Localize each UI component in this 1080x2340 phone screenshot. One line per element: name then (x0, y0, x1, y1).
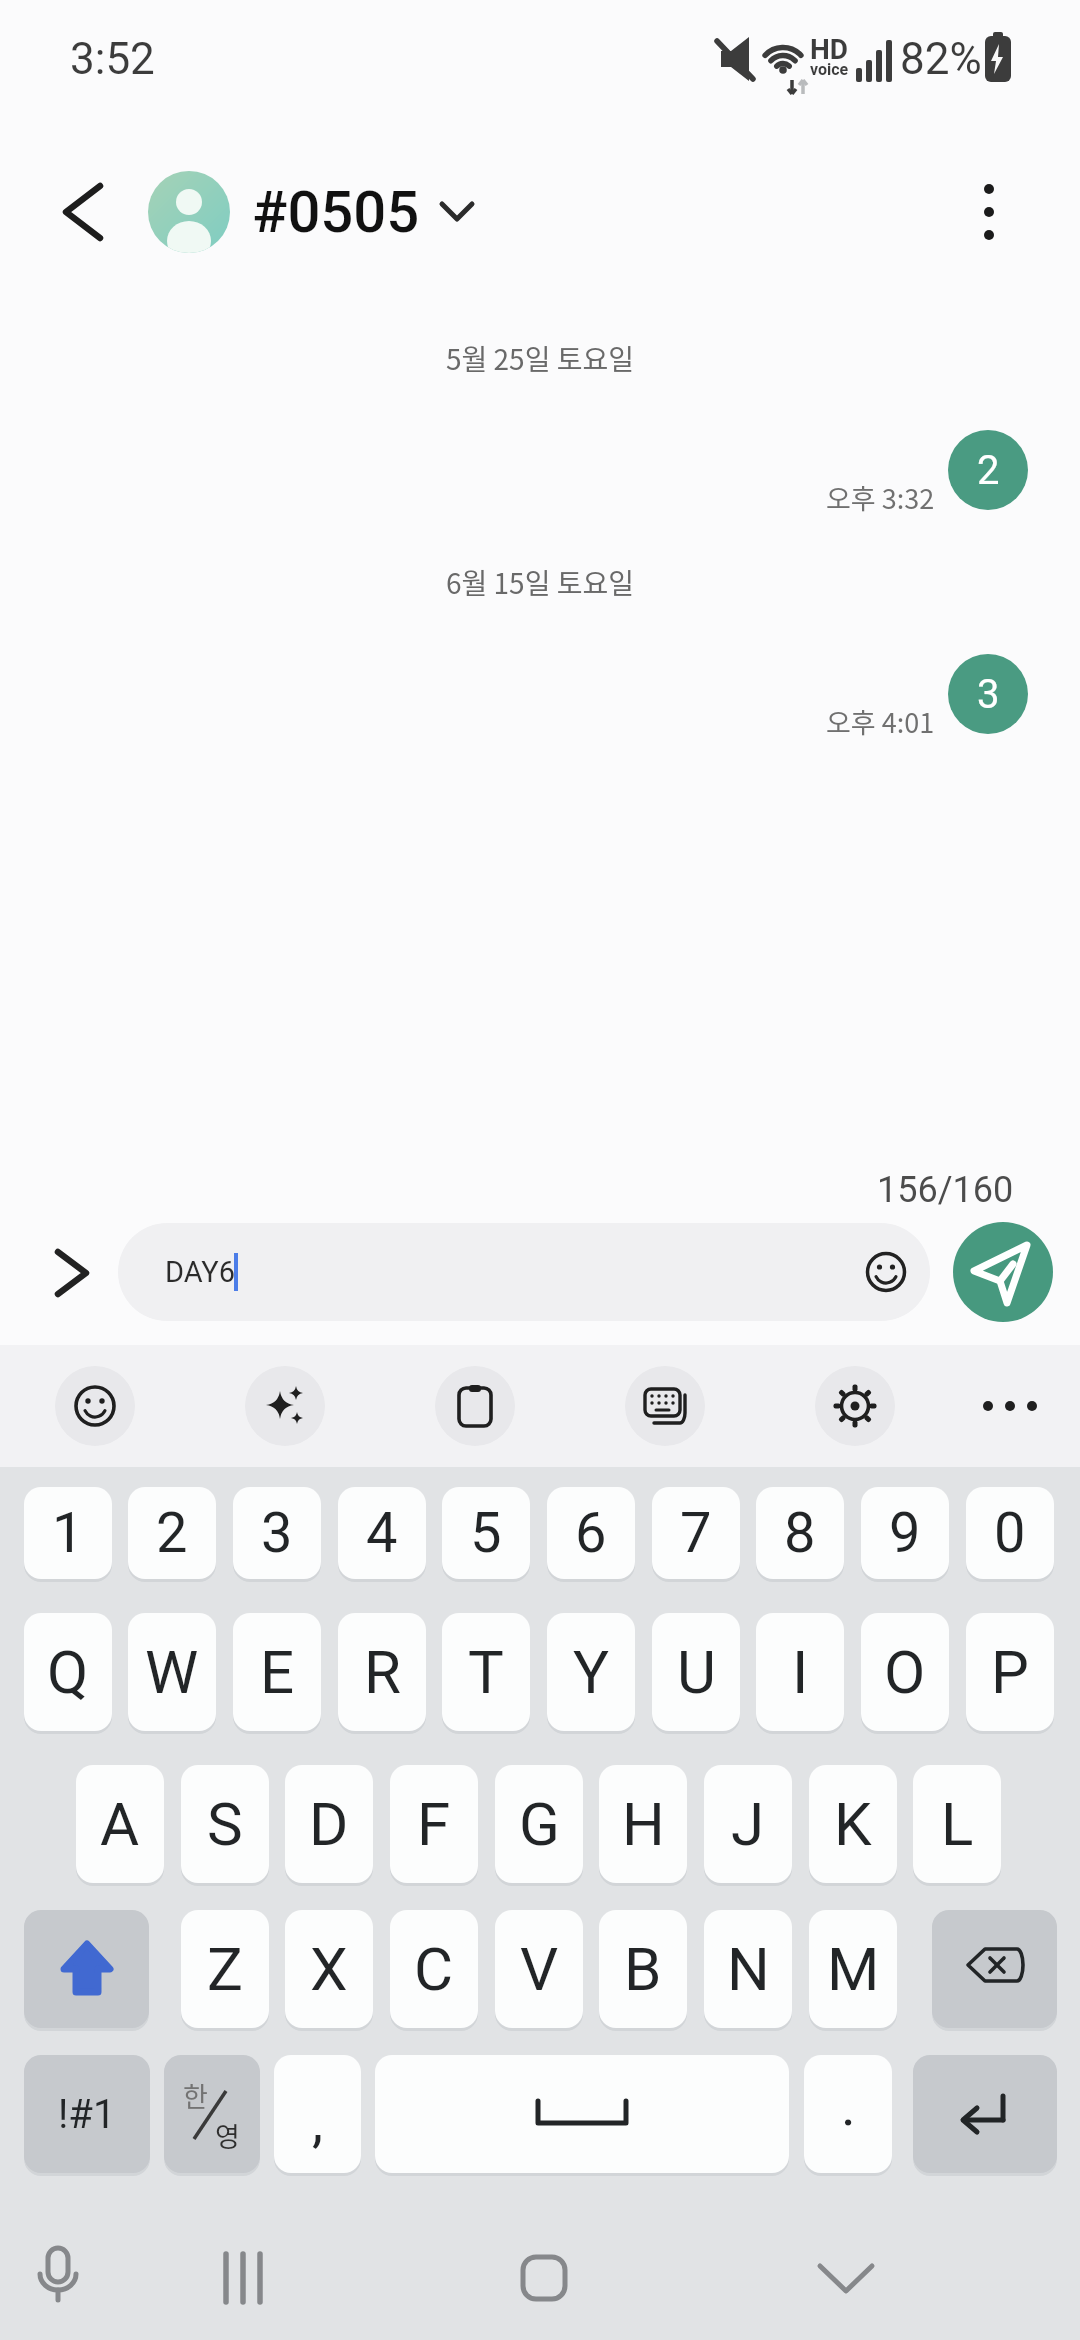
button[interactable] (42, 172, 122, 252)
staticText: A (100, 1789, 140, 1859)
button[interactable]: 2 (948, 430, 1028, 510)
button[interactable]: 0 (966, 1487, 1054, 1579)
staticText: , (312, 2089, 324, 2155)
button[interactable]: A (76, 1765, 164, 1883)
button[interactable] (913, 2055, 1057, 2173)
button[interactable] (10, 2230, 106, 2326)
button[interactable]: Z (181, 1910, 269, 2028)
button[interactable] (38, 1235, 102, 1311)
button[interactable]: N (704, 1910, 792, 2028)
button[interactable]: D (285, 1765, 373, 1883)
staticText: F (417, 1789, 451, 1859)
button[interactable]: U (652, 1613, 740, 1731)
staticText: voice (810, 60, 849, 79)
button[interactable] (798, 2230, 894, 2326)
button[interactable]: 한 (164, 2055, 260, 2173)
button[interactable]: E (233, 1613, 321, 1731)
staticText: !#1 (58, 2091, 116, 2138)
staticText: HD (810, 33, 849, 63)
button[interactable] (953, 1222, 1053, 1322)
button[interactable]: C (390, 1910, 478, 2028)
staticText: 6 (575, 1500, 607, 1566)
button[interactable]: Y (547, 1613, 635, 1731)
button[interactable]: 8 (756, 1487, 844, 1579)
button[interactable]: T (442, 1613, 530, 1731)
staticText: R (364, 1637, 401, 1707)
button[interactable] (954, 172, 1024, 252)
button[interactable]: X (285, 1910, 373, 2028)
button[interactable]: L (913, 1765, 1001, 1883)
button[interactable]: M (809, 1910, 897, 2028)
staticText: 5 (470, 1500, 502, 1566)
button[interactable] (815, 1366, 895, 1446)
button[interactable] (932, 1910, 1057, 2028)
staticText: G (519, 1789, 560, 1859)
staticText: DAY6 (165, 1255, 236, 1289)
button[interactable]: !#1 (24, 2055, 150, 2173)
staticText: 8 (784, 1500, 816, 1566)
button[interactable]: Q (24, 1613, 112, 1731)
staticText: K (834, 1789, 872, 1859)
button[interactable]: S (181, 1765, 269, 1883)
button[interactable]: B (599, 1910, 687, 2028)
button[interactable]: 3 (948, 654, 1028, 734)
button[interactable]: #0505 (252, 171, 432, 253)
button[interactable] (148, 171, 230, 253)
button[interactable]: , (274, 2055, 361, 2173)
staticText: . (841, 2073, 856, 2139)
button[interactable]: 9 (861, 1487, 949, 1579)
button[interactable] (375, 2055, 789, 2173)
button[interactable]: 7 (652, 1487, 740, 1579)
button[interactable] (496, 2230, 592, 2326)
button[interactable]: . (804, 2055, 892, 2173)
staticText: 한 (183, 2076, 208, 2115)
staticText: 0 (994, 1500, 1026, 1566)
staticText: 3:52 (70, 33, 155, 81)
button[interactable]: 1 (24, 1487, 112, 1579)
staticText: B (624, 1934, 662, 2004)
staticText: X (310, 1934, 348, 2004)
button[interactable] (245, 1366, 325, 1446)
button[interactable] (55, 1366, 135, 1446)
staticText: W (145, 1637, 199, 1707)
button[interactable]: K (809, 1765, 897, 1883)
staticText: O (884, 1637, 926, 1707)
button[interactable]: 3 (233, 1487, 321, 1579)
button[interactable]: 5 (442, 1487, 530, 1579)
staticText: U (677, 1637, 716, 1707)
staticText: E (260, 1637, 295, 1707)
button[interactable]: DAY6 (118, 1223, 930, 1321)
button[interactable]: 6 (547, 1487, 635, 1579)
button[interactable]: V (495, 1910, 583, 2028)
button[interactable] (960, 1366, 1060, 1446)
staticText: 7 (680, 1500, 712, 1566)
staticText: 9 (889, 1500, 921, 1566)
button[interactable]: R (338, 1613, 426, 1731)
staticText: J (731, 1789, 765, 1859)
button[interactable] (625, 1366, 705, 1446)
staticText: 오후 3:32 (826, 478, 935, 517)
button[interactable] (24, 1910, 149, 2028)
button[interactable]: I (756, 1613, 844, 1731)
staticText: Z (207, 1934, 243, 2004)
staticText: 3 (261, 1500, 293, 1566)
staticText: V (520, 1934, 559, 2004)
button[interactable]: P (966, 1613, 1054, 1731)
staticText: 1 (52, 1500, 84, 1566)
staticText: 6월 15일 토요일 (446, 562, 634, 603)
button[interactable]: H (599, 1765, 687, 1883)
staticText: L (941, 1789, 974, 1859)
button[interactable]: W (128, 1613, 216, 1731)
button[interactable]: F (390, 1765, 478, 1883)
staticText: N (727, 1934, 770, 2004)
staticText: P (991, 1637, 1029, 1707)
button[interactable]: J (704, 1765, 792, 1883)
button[interactable]: 2 (128, 1487, 216, 1579)
button[interactable] (195, 2230, 291, 2326)
button[interactable]: G (495, 1765, 583, 1883)
staticText: 오후 4:01 (826, 702, 935, 741)
button[interactable]: O (861, 1613, 949, 1731)
button[interactable] (435, 1366, 515, 1446)
button[interactable]: 4 (338, 1487, 426, 1579)
staticText: 156/160 (877, 1169, 1014, 1211)
